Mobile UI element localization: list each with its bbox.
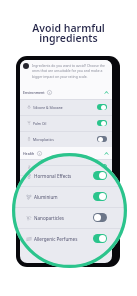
staticText: Microplastics — [33, 137, 54, 142]
button[interactable]: Allergenic Perfumes — [12, 228, 127, 249]
staticText: Ingredients do you want to avoid? Choose… — [32, 63, 109, 79]
staticText: Nanoparticles — [33, 197, 56, 202]
button[interactable]: Enabled — [97, 164, 107, 170]
staticText: Hormonal Effects — [33, 165, 61, 170]
button[interactable]: Enabled — [93, 192, 107, 201]
button[interactable]: Nanoparticles — [12, 207, 127, 228]
button[interactable]: Allergenic Perfumes — [20, 207, 112, 223]
button[interactable]: Microplastics — [20, 131, 112, 147]
staticText: Aluminium — [34, 194, 58, 200]
button[interactable]: Hormonal Effects — [20, 159, 112, 175]
button[interactable]: Disabled — [97, 136, 107, 142]
staticText: Palm Oil — [33, 121, 47, 126]
button[interactable]: Health — [20, 147, 112, 159]
button[interactable]: Aluminium — [12, 186, 127, 207]
button[interactable]: Hormonal Effects — [12, 165, 127, 186]
staticText: Allergenic Perfumes — [33, 213, 66, 218]
button[interactable]: Enabled — [97, 104, 107, 110]
button[interactable]: Nanoparticles — [20, 191, 112, 207]
staticText: Avoid harmful ingredients — [0, 21, 137, 45]
staticText: Allergenic Perfumes — [34, 236, 78, 242]
button[interactable]: Disabled — [97, 196, 107, 202]
staticText: Hormonal Effects — [34, 173, 72, 179]
button[interactable]: Palm Oil — [20, 115, 112, 131]
button[interactable]: Enabled — [97, 120, 107, 126]
button[interactable]: Enabled — [93, 234, 107, 243]
staticText: Silicone & Siloxane — [33, 105, 63, 110]
button[interactable]: Silicone & Siloxane — [20, 99, 112, 115]
button[interactable]: Enabled — [93, 171, 107, 180]
staticText: Health — [23, 151, 35, 156]
button[interactable]: Environment — [20, 86, 112, 99]
staticText: Environment — [23, 90, 45, 95]
button[interactable]: Enabled — [97, 212, 107, 218]
button[interactable]: Disabled — [93, 213, 107, 222]
staticText: Nanoparticles — [34, 215, 65, 221]
button[interactable]: Aluminium — [20, 175, 112, 191]
